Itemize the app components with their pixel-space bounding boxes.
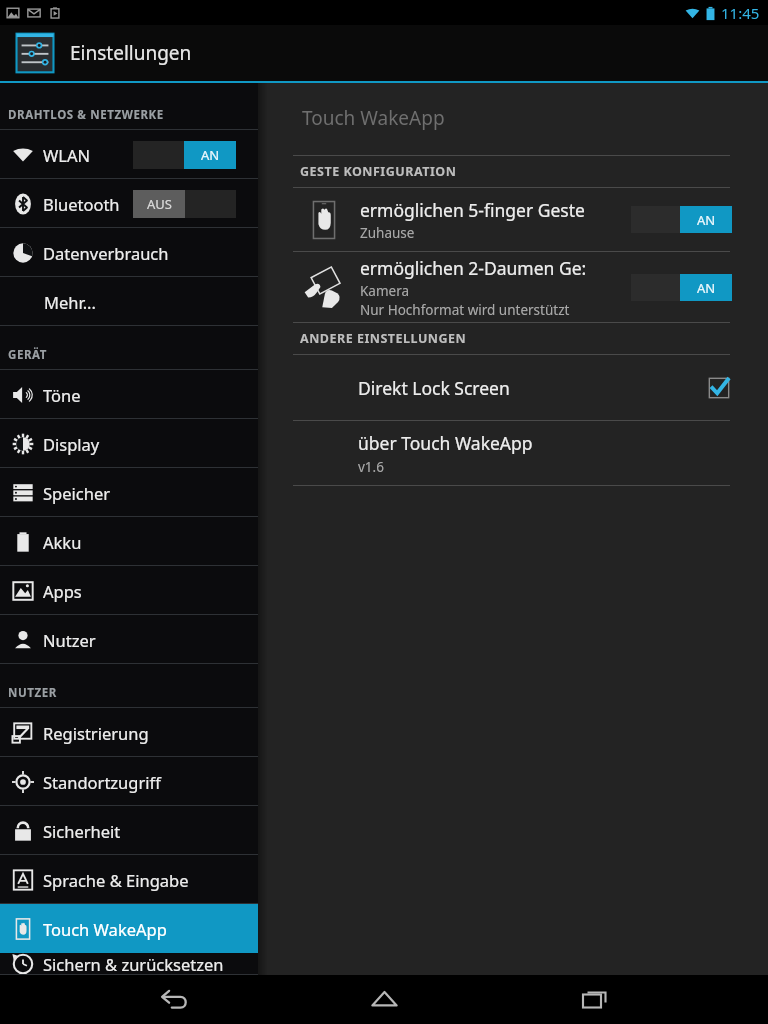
button[interactable]: Speicher xyxy=(0,468,258,517)
staticText: AUS xyxy=(147,195,172,213)
button[interactable]: Sicherheit xyxy=(0,806,258,855)
button[interactable]: Back xyxy=(138,975,210,1024)
staticText: Mehr... xyxy=(44,291,96,313)
button[interactable]: Apps xyxy=(0,566,258,615)
button[interactable]: Recent apps xyxy=(558,975,630,1024)
staticText: v1.6 xyxy=(358,458,384,476)
staticText: Zuhause xyxy=(360,224,415,242)
staticText: ermöglichen 5-finger Geste xyxy=(360,198,585,222)
staticText: Datenverbrauch xyxy=(43,242,169,264)
button[interactable]: Display xyxy=(0,419,258,468)
staticText: Apps xyxy=(43,580,82,602)
button[interactable]: Home xyxy=(348,975,420,1024)
button[interactable]: Sichern & zurücksetzen xyxy=(0,953,258,975)
staticText: GESTE KONFIGURATION xyxy=(300,163,457,180)
staticText: Display xyxy=(43,433,100,455)
staticText: Sprache & Eingabe xyxy=(43,869,189,891)
button[interactable]: Sprache & Eingabe xyxy=(0,855,258,904)
button[interactable]: AN xyxy=(133,141,236,169)
button[interactable]: ermöglichen 5-finger Geste xyxy=(258,188,768,251)
button[interactable]: Nutzer xyxy=(0,615,258,664)
button[interactable]: über Touch WakeApp xyxy=(258,421,768,486)
staticText: über Touch WakeApp xyxy=(358,431,533,455)
button[interactable]: Datenverbrauch xyxy=(0,228,258,277)
staticText: Nutzer xyxy=(43,629,96,651)
button[interactable]: Direkt Lock Screen xyxy=(258,355,768,421)
staticText: ermöglichen 2-Daumen Ge: xyxy=(360,256,587,280)
staticText: Sichern & zurücksetzen xyxy=(43,953,224,975)
button[interactable]: Registrierung xyxy=(0,708,258,757)
button[interactable]: AN xyxy=(631,274,732,301)
button[interactable]: Touch WakeApp xyxy=(0,904,258,953)
button[interactable]: ermöglichen 2-Daumen Ge: xyxy=(258,252,768,322)
button[interactable]: Töne xyxy=(0,370,258,419)
staticText: Töne xyxy=(43,384,81,406)
staticText: Registrierung xyxy=(43,722,149,744)
staticText: Speicher xyxy=(43,482,111,504)
staticText: AN xyxy=(697,279,716,297)
staticText: DRAHTLOS & NETZWERKE xyxy=(8,107,164,123)
staticText: Akku xyxy=(43,531,82,553)
staticText: AN xyxy=(697,211,716,229)
staticText: Einstellungen xyxy=(70,40,192,66)
staticText: Direkt Lock Screen xyxy=(358,376,510,400)
staticText: Touch WakeApp xyxy=(302,105,445,131)
button[interactable]: Akku xyxy=(0,517,258,566)
button[interactable]: Mehr... xyxy=(0,277,258,326)
staticText: GERÄT xyxy=(8,347,48,363)
button[interactable]: Bluetooth xyxy=(0,179,258,228)
staticText: Kamera xyxy=(360,282,410,300)
staticText: ANDERE EINSTELLUNGEN xyxy=(300,330,467,347)
staticText: 11:45 xyxy=(721,3,760,23)
button[interactable]: AUS xyxy=(133,190,236,218)
staticText: WLAN xyxy=(43,144,91,166)
staticText: Standortzugriff xyxy=(43,771,161,793)
staticText: Bluetooth xyxy=(43,193,120,215)
button[interactable]: AN xyxy=(631,206,732,233)
staticText: AN xyxy=(201,146,220,164)
staticText: Touch WakeApp xyxy=(43,918,167,940)
button[interactable]: WLAN xyxy=(0,130,258,179)
button[interactable]: Standortzugriff xyxy=(0,757,258,806)
staticText: Nur Hochformat wird unterstützt xyxy=(360,301,570,319)
staticText: Sicherheit xyxy=(43,820,121,842)
staticText: NUTZER xyxy=(8,685,57,701)
